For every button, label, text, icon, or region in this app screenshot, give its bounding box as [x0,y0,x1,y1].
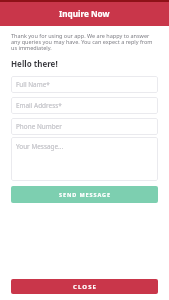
staticText: Full Name* [16,80,50,89]
button[interactable]: Phone Number [11,118,158,135]
button[interactable]: CLOSE [11,279,158,294]
button[interactable]: Full Name* [11,76,158,93]
staticText: Phone Number [16,122,62,131]
staticText: Thank you for using our app. We are happ… [11,32,158,51]
button[interactable]: SEND MESSAGE [11,186,158,203]
staticText: SEND MESSAGE [59,191,111,198]
button[interactable]: Your Message... [11,137,158,181]
staticText: Your Message... [16,142,64,151]
staticText: Hello there! [11,58,58,69]
staticText: Email Address* [16,101,62,110]
staticText: CLOSE [73,283,97,291]
staticText: Inquire Now [59,8,110,19]
button[interactable]: Email Address* [11,97,158,114]
